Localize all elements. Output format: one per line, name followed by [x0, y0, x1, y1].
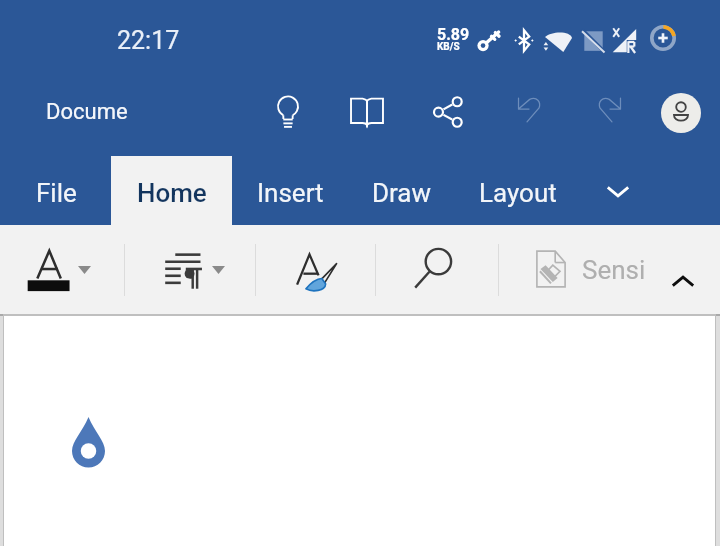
button[interactable]: Sensi	[520, 225, 656, 314]
button[interactable]: Font color	[4, 225, 120, 314]
button[interactable]: More tabs	[592, 156, 644, 225]
staticText: Sensi	[582, 255, 646, 285]
staticText: File	[36, 178, 77, 208]
button[interactable]	[111, 156, 232, 225]
staticText: Home	[137, 178, 207, 208]
staticText: 22:17	[117, 26, 180, 55]
button[interactable]: Styles	[268, 225, 372, 314]
button[interactable]: Paragraph	[140, 225, 252, 314]
button[interactable]: Undo	[502, 85, 556, 139]
staticText: Draw	[372, 178, 432, 208]
button[interactable]: Share	[421, 85, 475, 139]
button[interactable]: Collapse ribbon	[656, 239, 710, 293]
button[interactable]: File	[19, 158, 93, 227]
staticText: 5.89	[437, 25, 470, 44]
staticText: KB/S	[437, 41, 460, 53]
staticText: Layout	[479, 178, 557, 208]
button[interactable]: Tell me	[261, 85, 315, 139]
button[interactable]: Draw	[355, 158, 449, 227]
staticText: Insert	[257, 178, 324, 208]
button[interactable]: Home	[118, 158, 226, 227]
button[interactable]: Insert	[240, 158, 340, 227]
button[interactable]: Search	[392, 225, 498, 314]
button[interactable]: Redo	[583, 85, 637, 139]
button[interactable]: Layout	[462, 158, 574, 227]
button[interactable]: Account	[661, 93, 701, 133]
staticText: Docume	[46, 99, 128, 125]
button[interactable]: Read mode	[340, 85, 394, 139]
